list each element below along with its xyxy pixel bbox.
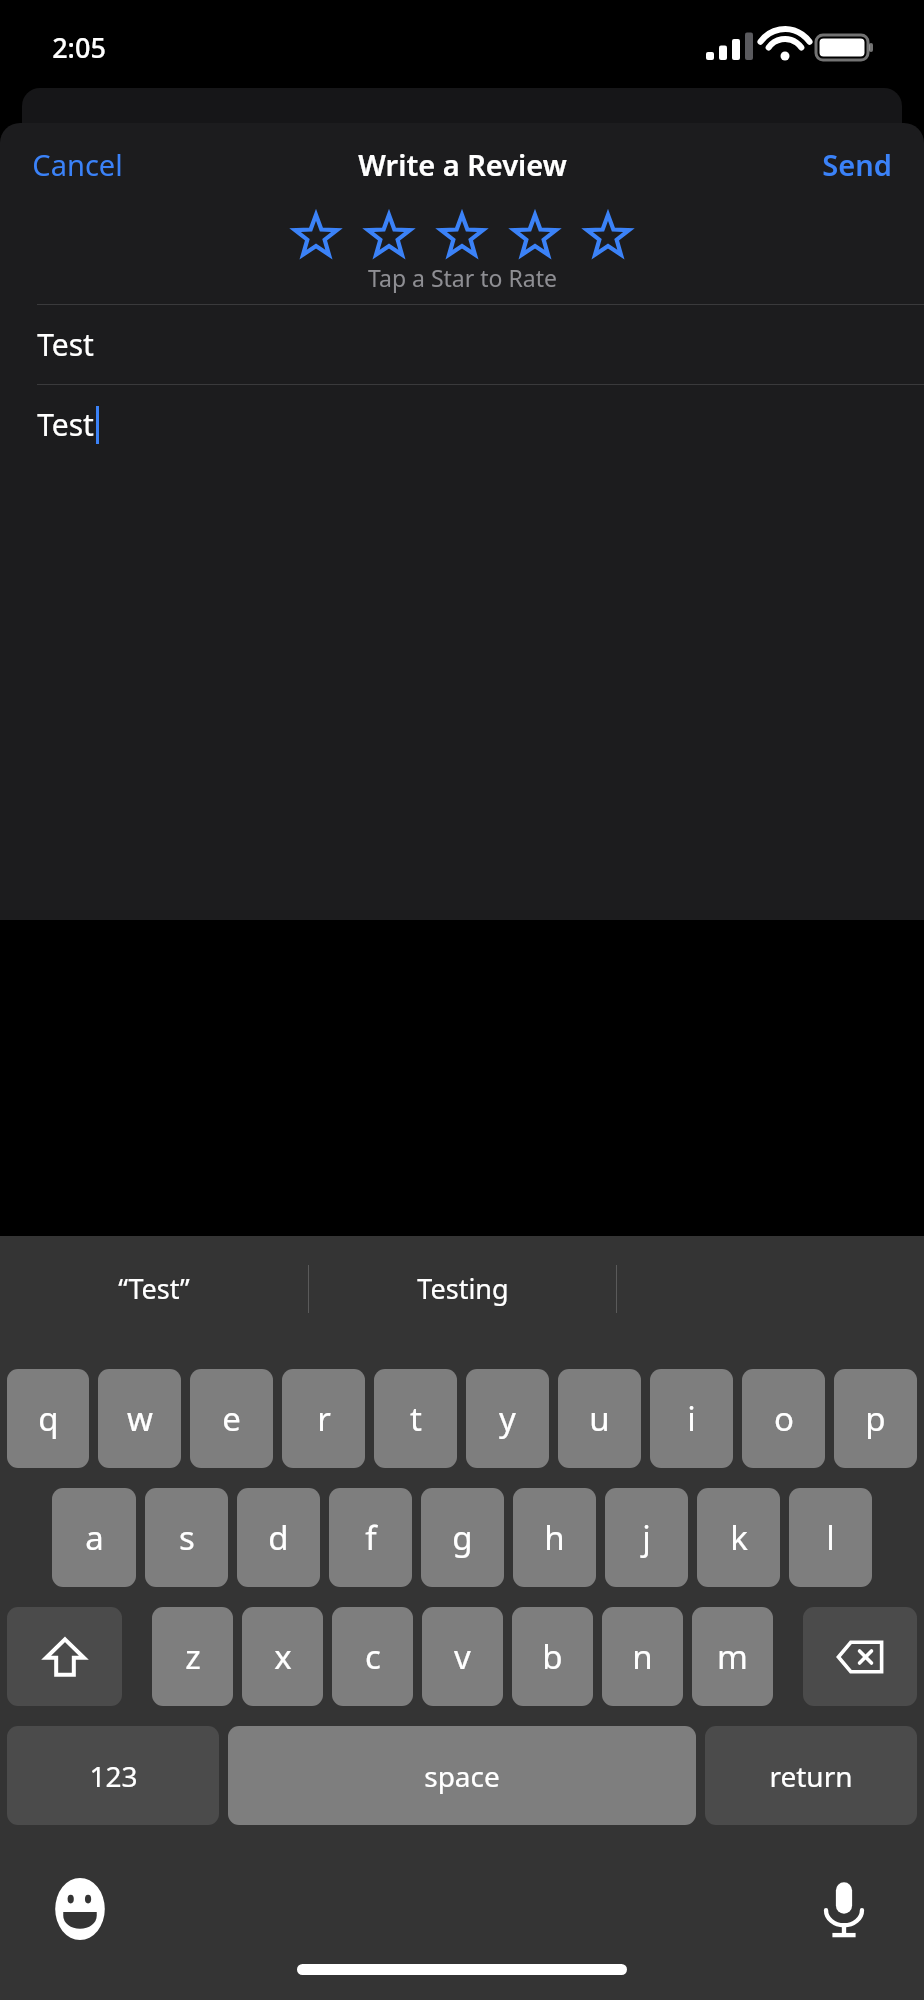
button[interactable]: b [512,1607,593,1709]
button[interactable]: q [7,1369,89,1471]
staticText: Test [37,324,94,365]
button[interactable]: Testing [309,1236,616,1341]
staticText: x [274,1634,292,1679]
staticText: b [542,1634,563,1679]
button[interactable]: i [650,1369,733,1471]
staticText: g [452,1515,473,1560]
staticText: a [85,1515,104,1560]
staticText: Tap a Star to Rate [368,262,557,293]
staticText: Test [37,404,94,445]
staticText: s [179,1515,195,1560]
button[interactable]: s [145,1488,228,1590]
button[interactable]: space [228,1726,696,1828]
staticText: l [826,1515,835,1560]
button[interactable]: r [282,1369,365,1471]
button[interactable]: Rate 3 stars [438,212,486,260]
button[interactable]: j [605,1488,688,1590]
staticText: space [424,1757,500,1795]
button[interactable]: y [466,1369,549,1471]
staticText: u [589,1396,610,1441]
staticText: 123 [89,1757,138,1795]
button[interactable]: Rate 2 stars [365,212,413,260]
button[interactable]: Send [790,133,924,196]
staticText: Send [822,145,892,184]
staticText: y [499,1396,516,1441]
staticText: v [454,1634,471,1679]
button[interactable]: “Test” [0,1236,308,1341]
button[interactable]: e [190,1369,273,1471]
button[interactable]: o [742,1369,825,1471]
button[interactable]: Shift [7,1607,122,1709]
button[interactable]: Test [0,385,924,464]
button[interactable]: Backspace [803,1607,917,1709]
button[interactable]: Test [0,305,924,384]
button[interactable]: Emoji [47,1876,113,1942]
staticText: n [632,1634,653,1679]
button[interactable]: u [558,1369,641,1471]
button[interactable]: Rate 5 stars [584,212,632,260]
staticText: t [410,1396,422,1441]
staticText: f [365,1515,377,1560]
staticText: m [717,1634,748,1679]
button[interactable]: d [237,1488,320,1590]
staticText: j [642,1515,651,1560]
button[interactable]: Cancel [0,133,155,196]
staticText: c [365,1634,381,1679]
button[interactable]: f [329,1488,412,1590]
staticText: r [317,1396,331,1441]
button[interactable]: w [98,1369,181,1471]
button[interactable]: x [242,1607,323,1709]
button[interactable]: a [52,1488,136,1590]
staticText: d [268,1515,289,1560]
button[interactable]: t [374,1369,457,1471]
staticText: Write a Review [358,145,567,184]
button[interactable]: c [332,1607,413,1709]
staticText: h [544,1515,565,1560]
button[interactable]: l [789,1488,872,1590]
staticText: p [865,1396,886,1441]
button[interactable]: h [513,1488,596,1590]
staticText: w [127,1396,153,1441]
button[interactable]: n [602,1607,683,1709]
staticText: k [730,1515,748,1560]
button[interactable]: Rate 1 stars [292,212,340,260]
button[interactable]: Dictation [811,1876,877,1942]
button[interactable]: g [421,1488,504,1590]
staticText: return [769,1757,853,1795]
staticText: e [222,1396,241,1441]
button[interactable]: Rate 4 stars [511,212,559,260]
staticText: “Test” [118,1270,190,1307]
staticText: 2:05 [52,29,106,66]
button[interactable]: v [422,1607,503,1709]
button[interactable]: 123 [7,1726,219,1828]
button[interactable]: k [697,1488,780,1590]
staticText: Testing [417,1270,509,1307]
staticText: i [687,1396,696,1441]
staticText: o [774,1396,794,1441]
button[interactable]: m [692,1607,773,1709]
button[interactable]: return [705,1726,917,1828]
button[interactable]: p [834,1369,917,1471]
staticText: Cancel [32,145,123,184]
staticText: z [185,1634,201,1679]
button[interactable]: z [152,1607,233,1709]
staticText: q [38,1396,59,1441]
